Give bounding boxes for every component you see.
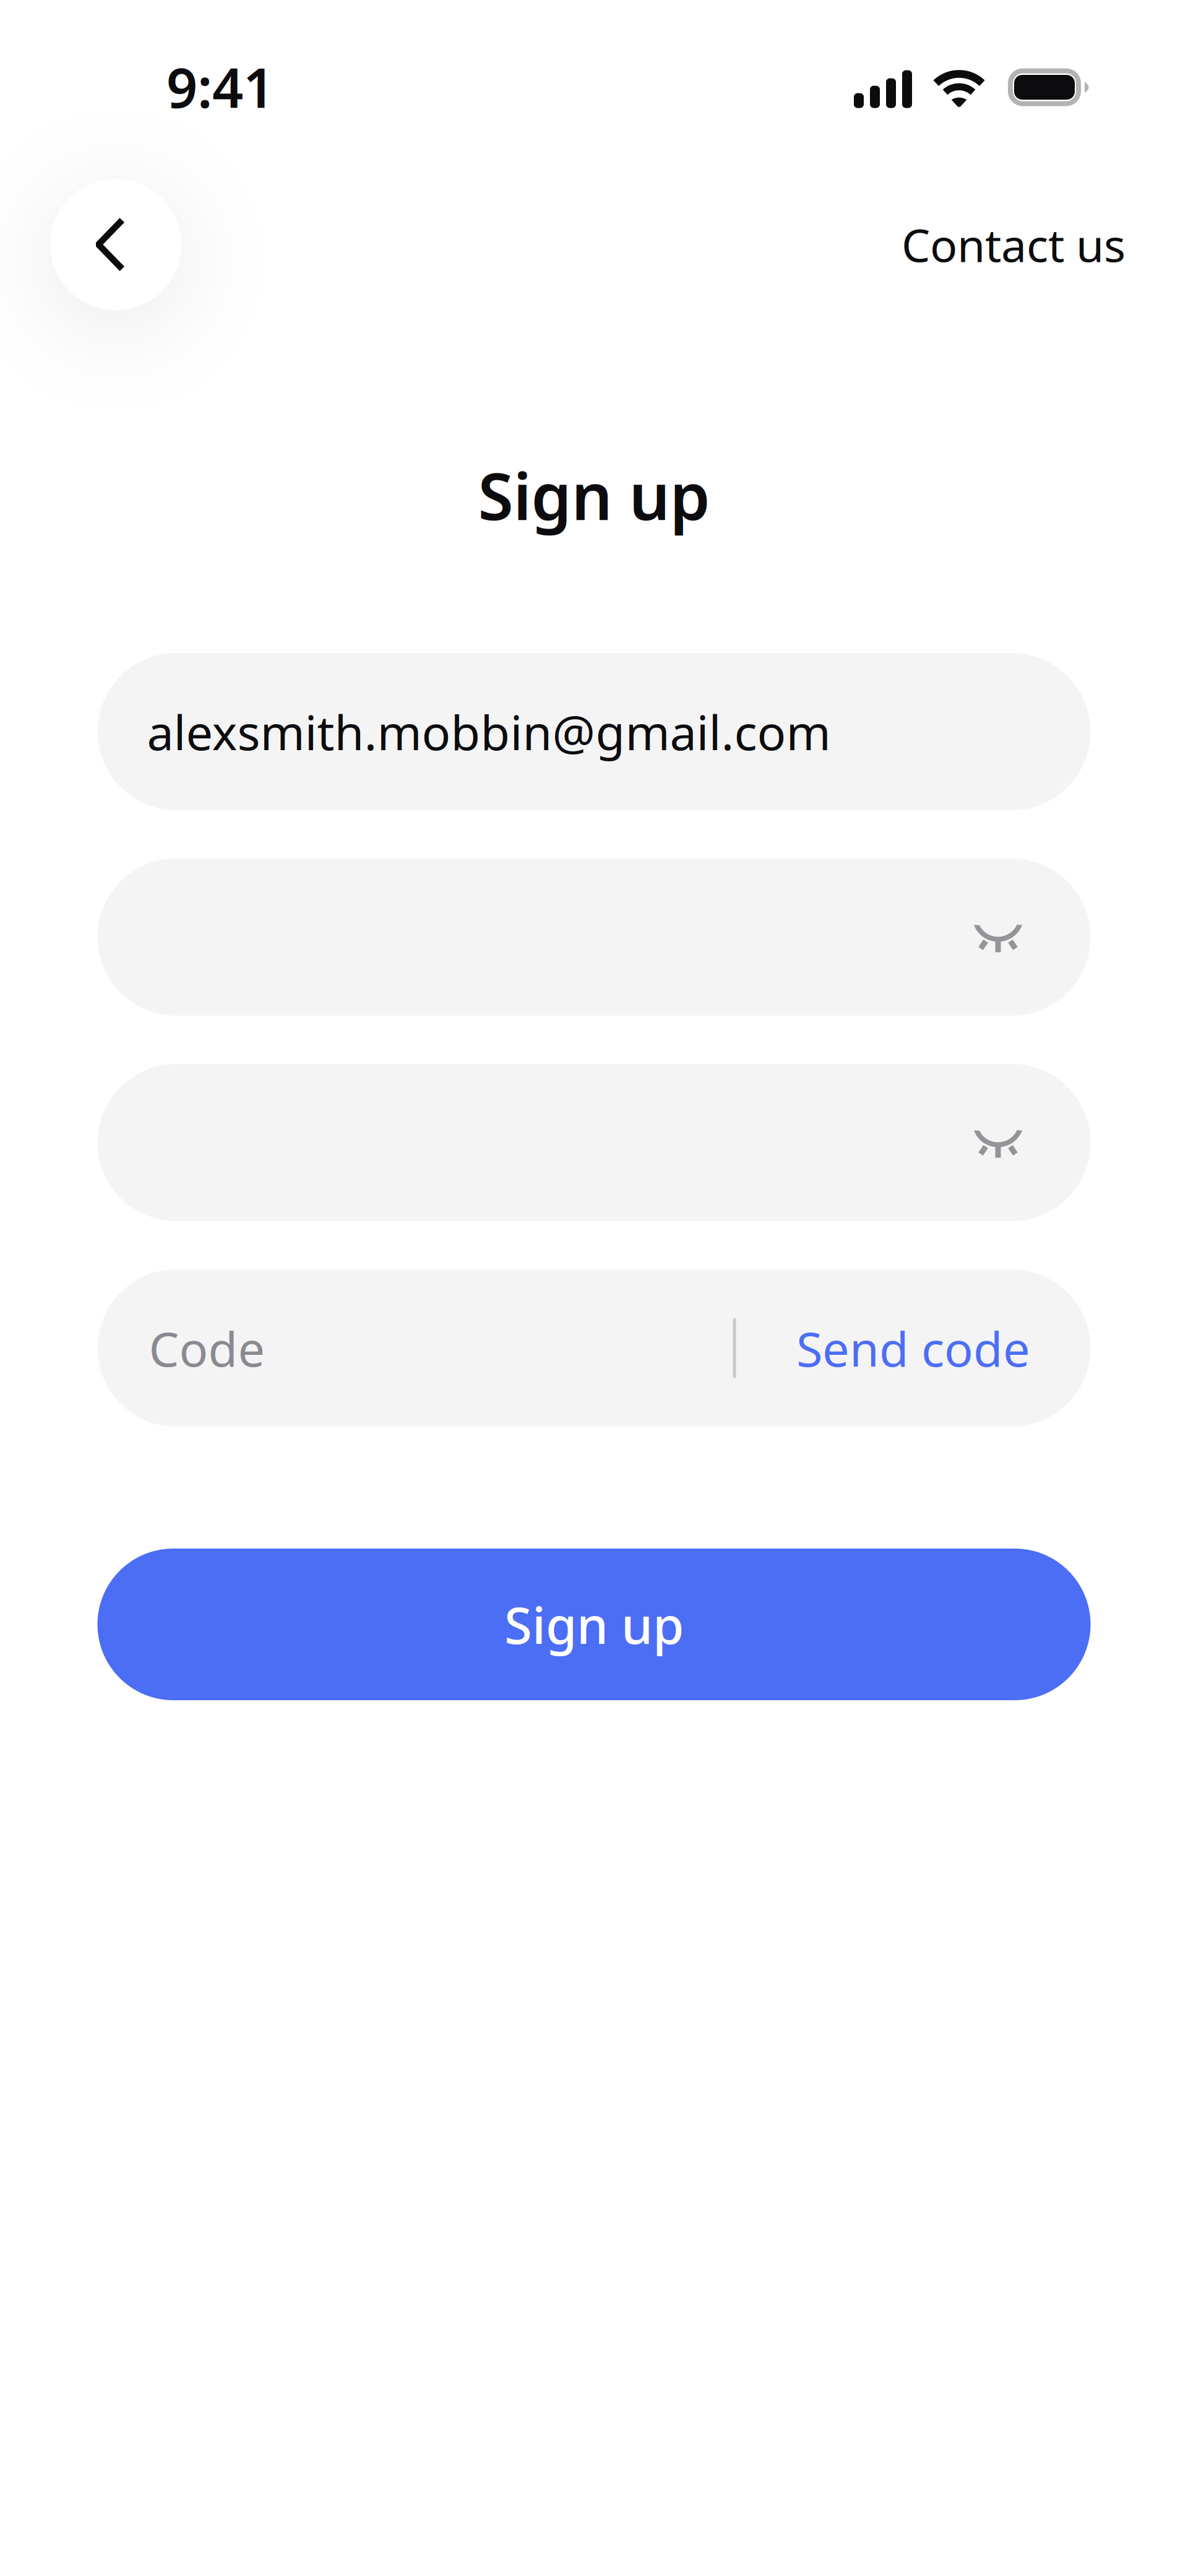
staticText: Code bbox=[149, 1316, 265, 1380]
staticText: 9:41 bbox=[166, 51, 274, 123]
button[interactable]: Show password bbox=[906, 858, 1091, 1016]
staticText: Sign up bbox=[478, 452, 710, 538]
staticText: alexsmith.mobbin@gmail.com bbox=[147, 700, 831, 763]
button[interactable]: Contact us bbox=[902, 179, 1126, 310]
button[interactable]: Show password bbox=[906, 1064, 1091, 1221]
staticText: Sign up bbox=[504, 1591, 684, 1658]
staticText: Send code bbox=[796, 1316, 1030, 1380]
staticText: Contact us bbox=[902, 214, 1126, 275]
button[interactable]: Send code bbox=[736, 1269, 1091, 1427]
button[interactable]: Back bbox=[50, 179, 181, 310]
button[interactable]: Sign up bbox=[97, 1549, 1091, 1700]
